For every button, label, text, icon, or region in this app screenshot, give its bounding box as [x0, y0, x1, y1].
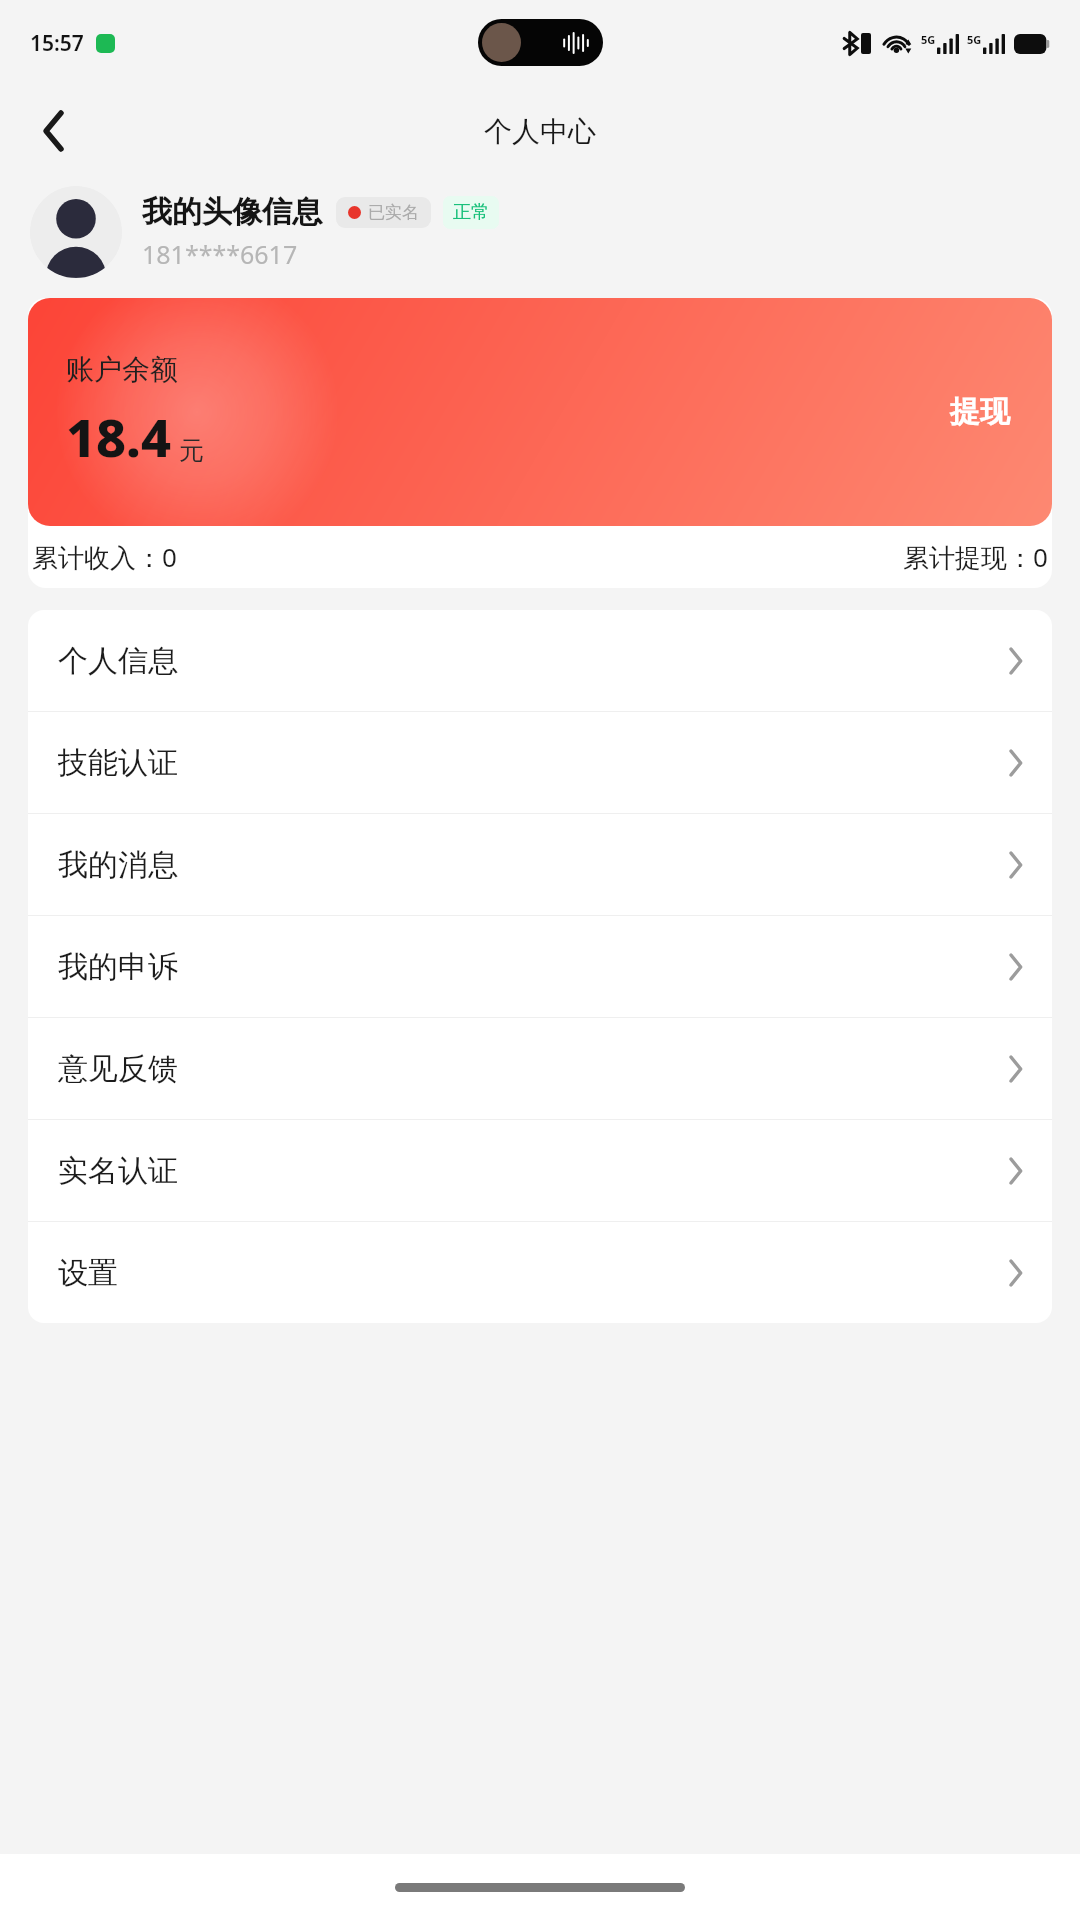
staticText: 18.4 — [66, 401, 171, 472]
button[interactable]: 实名认证 — [28, 1120, 1052, 1221]
staticText: 提现 — [950, 393, 1010, 431]
staticText: 已实名 — [368, 202, 419, 223]
button[interactable]: 我的消息 — [28, 814, 1052, 915]
button[interactable]: 我的头像信息 — [0, 176, 1080, 288]
staticText: 个人中心 — [484, 114, 596, 149]
staticText: 累计提现：0 — [903, 539, 1048, 575]
staticText: 5G — [967, 32, 982, 47]
button[interactable]: Back — [22, 99, 86, 163]
button[interactable]: 提现 — [942, 385, 1018, 439]
button[interactable]: 账户余额 — [28, 298, 1052, 526]
staticText: 元 — [179, 435, 204, 466]
button[interactable]: 意见反馈 — [28, 1018, 1052, 1119]
button[interactable]: 技能认证 — [28, 712, 1052, 813]
staticText: 账户余额 — [66, 352, 178, 387]
staticText: 实名认证 — [58, 1152, 178, 1190]
staticText: 15:57 — [30, 29, 84, 58]
staticText: 设置 — [58, 1254, 118, 1292]
button[interactable]: 我的申诉 — [28, 916, 1052, 1017]
staticText: 意见反馈 — [58, 1050, 178, 1088]
staticText: 我的消息 — [58, 846, 178, 884]
staticText: 累计收入：0 — [32, 539, 177, 575]
staticText: 181****6617 — [142, 237, 298, 271]
staticText: 正常 — [453, 201, 489, 224]
staticText: 我的申诉 — [58, 948, 178, 986]
staticText: 个人信息 — [58, 642, 178, 680]
staticText: 技能认证 — [58, 744, 178, 782]
button[interactable]: 设置 — [28, 1222, 1052, 1323]
staticText: 我的头像信息 — [142, 193, 322, 231]
button[interactable]: 个人信息 — [28, 610, 1052, 711]
staticText: 5G — [921, 32, 936, 47]
